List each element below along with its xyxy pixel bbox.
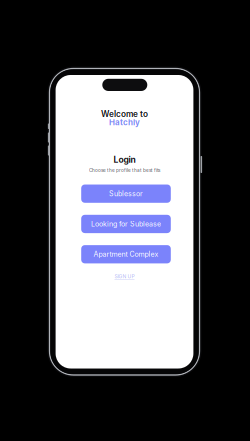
button[interactable]: Apartment Complex	[81, 245, 171, 263]
staticText: SIGN UP	[114, 273, 134, 279]
staticText: Hatchly	[109, 117, 140, 127]
staticText: Welcome to	[101, 109, 148, 119]
staticText: Login	[113, 154, 135, 165]
button[interactable]: SIGN UP	[56, 273, 193, 279]
staticText: Apartment Complex	[93, 250, 158, 258]
staticText: Looking for Sublease	[91, 220, 161, 228]
button[interactable]: Looking for Sublease	[81, 215, 171, 233]
button[interactable]: Sublessor	[81, 184, 171, 203]
staticText: Choose the profile that best fits	[89, 168, 160, 173]
staticText: Sublessor	[109, 189, 143, 198]
